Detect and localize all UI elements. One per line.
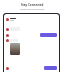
button[interactable]: Sender avatar [6, 39, 9, 42]
button[interactable]: Sender avatar [6, 27, 57, 31]
button[interactable]: Sender avatar [6, 67, 9, 70]
button[interactable]: Sender avatar [6, 33, 57, 37]
staticText: Stay Connected [21, 3, 44, 7]
button[interactable]: Contact avatar [6, 18, 57, 21]
button[interactable]: Sender avatar [6, 39, 57, 42]
button[interactable]: Sender avatar [6, 66, 57, 70]
staticText: Chat with your friends anytime [20, 8, 45, 10]
button[interactable]: Sender avatar [6, 28, 9, 31]
button[interactable]: Sender avatar [6, 34, 9, 37]
button[interactable]: Photo attachment [10, 43, 20, 55]
button[interactable]: Contact avatar [6, 18, 9, 21]
